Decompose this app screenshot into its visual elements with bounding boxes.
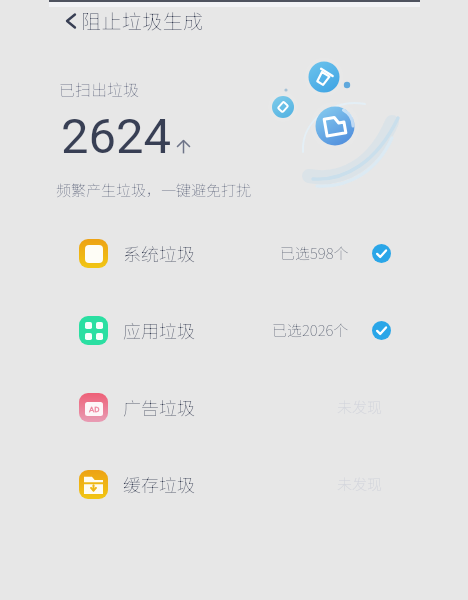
staticText: 缓存垃圾 [123, 471, 195, 497]
staticText: 已扫出垃圾 [59, 77, 140, 100]
staticText: 频繁产生垃圾，一键避免打扰 [56, 179, 252, 201]
staticText: 应用垃圾 [123, 317, 195, 343]
button[interactable]: AD [0, 369, 468, 446]
staticText: AD [89, 405, 100, 414]
staticText: 系统垃圾 [123, 240, 195, 266]
staticText: 未发现 [337, 396, 383, 418]
button[interactable]: 应用垃圾 [0, 292, 468, 369]
staticText: 已选2026个 [272, 319, 349, 341]
staticText: 2624 [61, 108, 172, 165]
staticText: 已选598个 [280, 242, 349, 264]
staticText: 广告垃圾 [123, 394, 195, 420]
staticText: 未发现 [337, 473, 383, 495]
button[interactable]: 系统垃圾 [0, 215, 468, 292]
button[interactable]: 缓存垃圾 [0, 446, 468, 523]
button[interactable]: Back [62, 8, 204, 34]
staticText: 阻止垃圾生成 [81, 6, 204, 32]
